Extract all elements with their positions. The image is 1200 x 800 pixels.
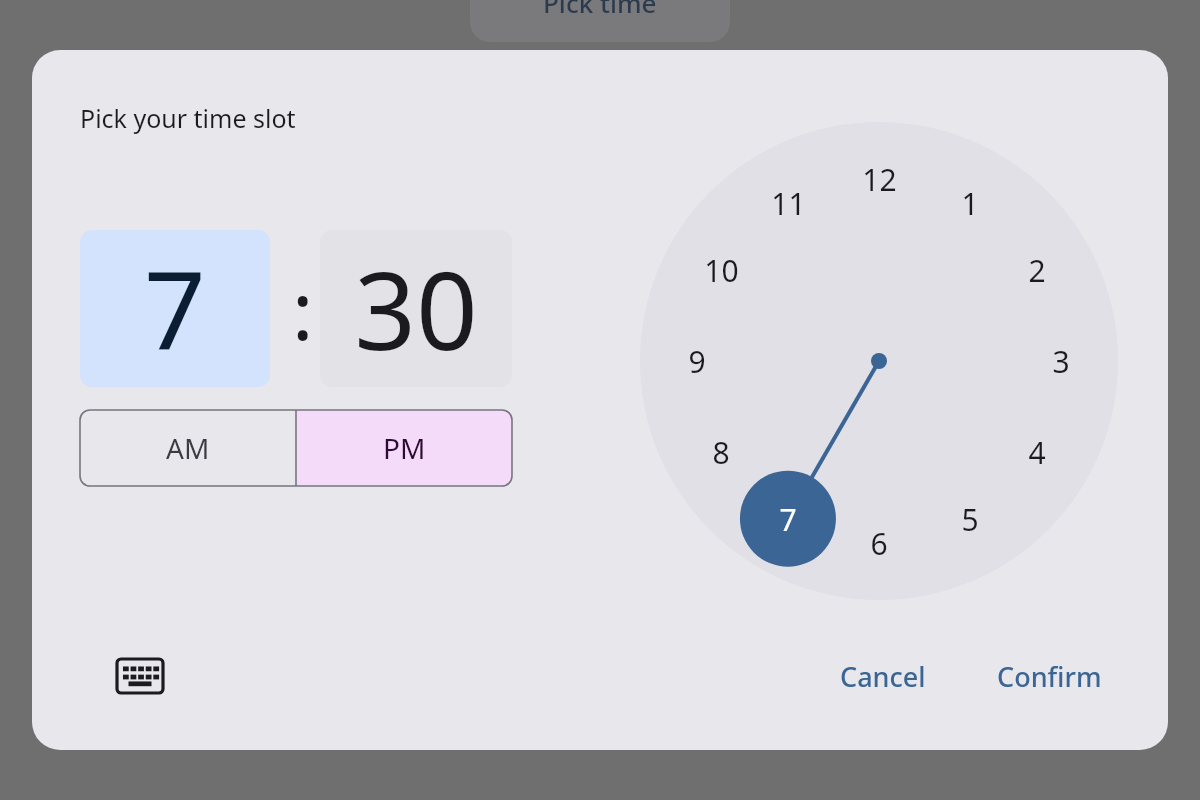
staticText: Pick your time slot xyxy=(80,101,296,135)
staticText: 9 xyxy=(688,341,706,382)
button[interactable]: Cancel xyxy=(812,646,954,706)
button[interactable]: PM xyxy=(296,410,512,486)
button[interactable]: 5 xyxy=(940,489,1000,549)
staticText: 5 xyxy=(961,499,979,540)
staticText: 8 xyxy=(712,432,730,473)
button[interactable]: 3 xyxy=(1031,331,1091,391)
staticText: 4 xyxy=(1028,432,1046,473)
button[interactable]: 2 xyxy=(1007,240,1067,300)
staticText: PM xyxy=(383,429,426,467)
staticText: 3 xyxy=(1052,341,1070,382)
staticText: 12 xyxy=(862,159,897,200)
staticText: Cancel xyxy=(840,658,926,695)
button[interactable]: Confirm xyxy=(970,646,1128,706)
staticText: 2 xyxy=(1028,250,1046,291)
staticText: 10 xyxy=(704,250,739,291)
button[interactable]: 8 xyxy=(691,422,751,482)
staticText: 6 xyxy=(870,523,888,564)
button[interactable]: 12 xyxy=(849,149,909,209)
button[interactable]: 9 xyxy=(667,331,727,391)
staticText: 11 xyxy=(771,183,806,224)
staticText: Pick time xyxy=(543,0,657,20)
staticText: 30 xyxy=(354,235,478,382)
staticText: : xyxy=(292,254,314,363)
staticText: AM xyxy=(166,429,210,467)
button[interactable]: Pick time xyxy=(470,0,730,42)
button[interactable]: Switch to text input xyxy=(104,640,176,712)
staticText: 1 xyxy=(961,183,979,224)
button[interactable]: 30 xyxy=(320,230,512,387)
staticText: 7 xyxy=(779,499,797,540)
button[interactable]: 7 xyxy=(80,230,270,387)
button[interactable]: 10 xyxy=(691,240,751,300)
button[interactable]: 1 xyxy=(940,173,1000,233)
button[interactable]: 11 xyxy=(758,173,818,233)
button[interactable]: AM xyxy=(80,410,296,486)
button[interactable]: 4 xyxy=(1007,422,1067,482)
button[interactable]: 6 xyxy=(849,513,909,573)
staticText: Confirm xyxy=(997,658,1102,695)
staticText: 7 xyxy=(144,235,206,382)
button[interactable]: 7 xyxy=(758,489,818,549)
